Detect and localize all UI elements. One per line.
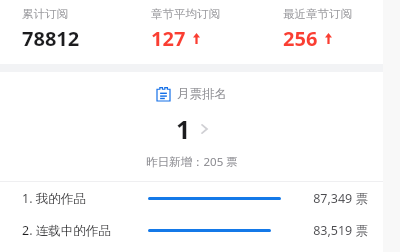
staticText: 78812 — [22, 25, 80, 52]
staticText: 累计订阅 — [22, 7, 68, 21]
other: 月票 — [157, 87, 170, 101]
button[interactable]: 1. 我的作品 — [0, 182, 383, 214]
staticText: 昨日新增：205 票 — [146, 154, 238, 170]
staticText: 87,349 票 — [313, 190, 368, 207]
button[interactable]: 章节平均订阅 — [130, 0, 266, 64]
staticText: 127 — [151, 25, 186, 52]
staticText: 256 — [283, 25, 318, 52]
button[interactable]: 月票 — [0, 72, 383, 181]
staticText: 月票排名 — [177, 86, 227, 102]
staticText: 83,519 票 — [313, 222, 368, 239]
staticText: 最近章节订阅 — [283, 7, 352, 21]
button[interactable]: 2. 连载中的作品 — [0, 214, 383, 246]
button[interactable]: 累计订阅 — [0, 0, 130, 64]
staticText: 1. 我的作品 — [22, 190, 142, 207]
staticText: 2. 连载中的作品 — [22, 222, 142, 239]
staticText: 章节平均订阅 — [151, 7, 220, 21]
staticText: 1 — [176, 112, 191, 146]
button[interactable]: 最近章节订阅 — [266, 0, 383, 64]
